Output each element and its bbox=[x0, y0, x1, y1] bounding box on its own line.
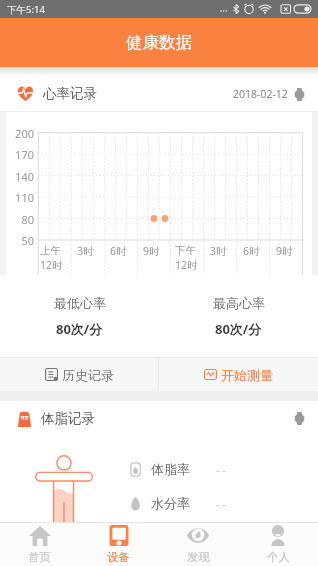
staticText: 2018-02-12 bbox=[233, 87, 288, 101]
staticText: 50 bbox=[6, 233, 34, 248]
staticText: 170 bbox=[6, 147, 34, 162]
button[interactable]: 发现 bbox=[158, 523, 238, 566]
staticText: 健康数据 bbox=[126, 32, 192, 53]
staticText: 6时 bbox=[110, 244, 127, 258]
staticText: 体脂记录 bbox=[41, 410, 95, 427]
button[interactable]: 个人 bbox=[238, 523, 318, 566]
staticText: 80 bbox=[6, 212, 34, 227]
button[interactable]: 开始测量 bbox=[159, 358, 318, 391]
staticText: 体脂率 bbox=[151, 461, 190, 477]
staticText: 下午 12时 bbox=[175, 244, 198, 272]
staticText: 80次/分 bbox=[215, 320, 262, 338]
staticText: 个人 bbox=[267, 550, 290, 564]
other: Watch device bbox=[294, 412, 305, 425]
staticText: 心率记录 bbox=[43, 85, 97, 102]
staticText: 3时 bbox=[210, 244, 227, 258]
staticText: 开始测量 bbox=[221, 367, 273, 383]
staticText: - - bbox=[216, 496, 226, 511]
staticText: 首页 bbox=[28, 550, 51, 564]
staticText: 9时 bbox=[143, 244, 160, 258]
staticText: - - bbox=[216, 462, 226, 477]
staticText: 110 bbox=[6, 190, 34, 205]
staticText: 下午5:14 bbox=[7, 3, 45, 16]
staticText: 历史记录 bbox=[62, 367, 114, 383]
button[interactable]: 首页 bbox=[0, 523, 79, 566]
staticText: 发现 bbox=[187, 550, 210, 564]
staticText: 6时 bbox=[243, 244, 260, 258]
staticText: 最低心率 bbox=[54, 295, 106, 311]
staticText: 80次/分 bbox=[56, 320, 103, 338]
other: Watch device bbox=[294, 88, 305, 101]
button[interactable]: 设备 bbox=[79, 523, 158, 566]
staticText: 最高心率 bbox=[213, 295, 265, 311]
staticText: 200 bbox=[6, 126, 34, 141]
staticText: 水分率 bbox=[151, 495, 190, 511]
button[interactable]: 历史记录 bbox=[0, 358, 158, 391]
staticText: 140 bbox=[6, 169, 34, 184]
staticText: 3时 bbox=[77, 244, 94, 258]
staticText: 上午 12时 bbox=[40, 244, 63, 272]
staticText: 设备 bbox=[107, 550, 130, 564]
staticText: 9时 bbox=[276, 244, 293, 258]
